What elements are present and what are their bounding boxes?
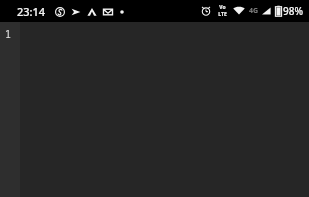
staticText: Vo <box>219 4 226 11</box>
staticText: 4G <box>249 6 259 16</box>
staticText: LTE <box>218 11 227 18</box>
staticText: 1 <box>5 27 11 41</box>
staticText: 23:14 <box>17 4 46 19</box>
staticText: 98% <box>283 4 303 18</box>
button[interactable]: 1 <box>0 22 20 197</box>
